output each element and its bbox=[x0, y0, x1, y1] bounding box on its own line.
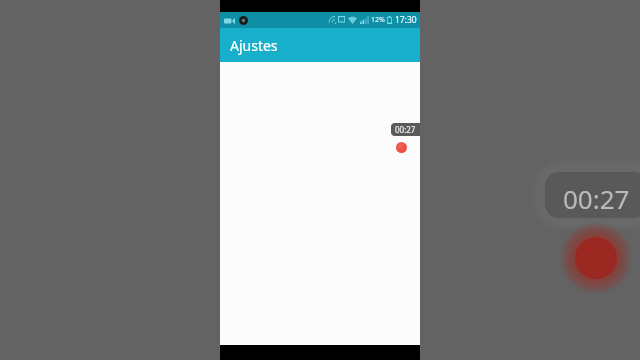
button[interactable]: 00:27 bbox=[391, 123, 420, 136]
staticText: Ajustes bbox=[230, 36, 278, 55]
button[interactable]: Stop recording bbox=[396, 142, 407, 153]
staticText: 12% bbox=[371, 15, 385, 25]
button[interactable]: Ajustes bbox=[220, 28, 420, 62]
staticText: 00:27 bbox=[563, 181, 630, 216]
staticText: 00:27 bbox=[395, 124, 416, 135]
staticText: 17:30 bbox=[395, 14, 417, 26]
